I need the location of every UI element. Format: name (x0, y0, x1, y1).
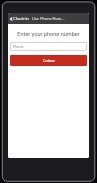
staticText: Use Phone Num... (32, 16, 65, 21)
staticText: Check-in (13, 16, 29, 21)
button[interactable]: Phone (10, 42, 87, 51)
staticText: Continue (43, 59, 55, 63)
button[interactable]: Continue (10, 55, 87, 66)
staticText: Phone (13, 45, 24, 49)
button[interactable]: Back (8, 13, 13, 24)
staticText: Enter your phone number (17, 31, 80, 38)
